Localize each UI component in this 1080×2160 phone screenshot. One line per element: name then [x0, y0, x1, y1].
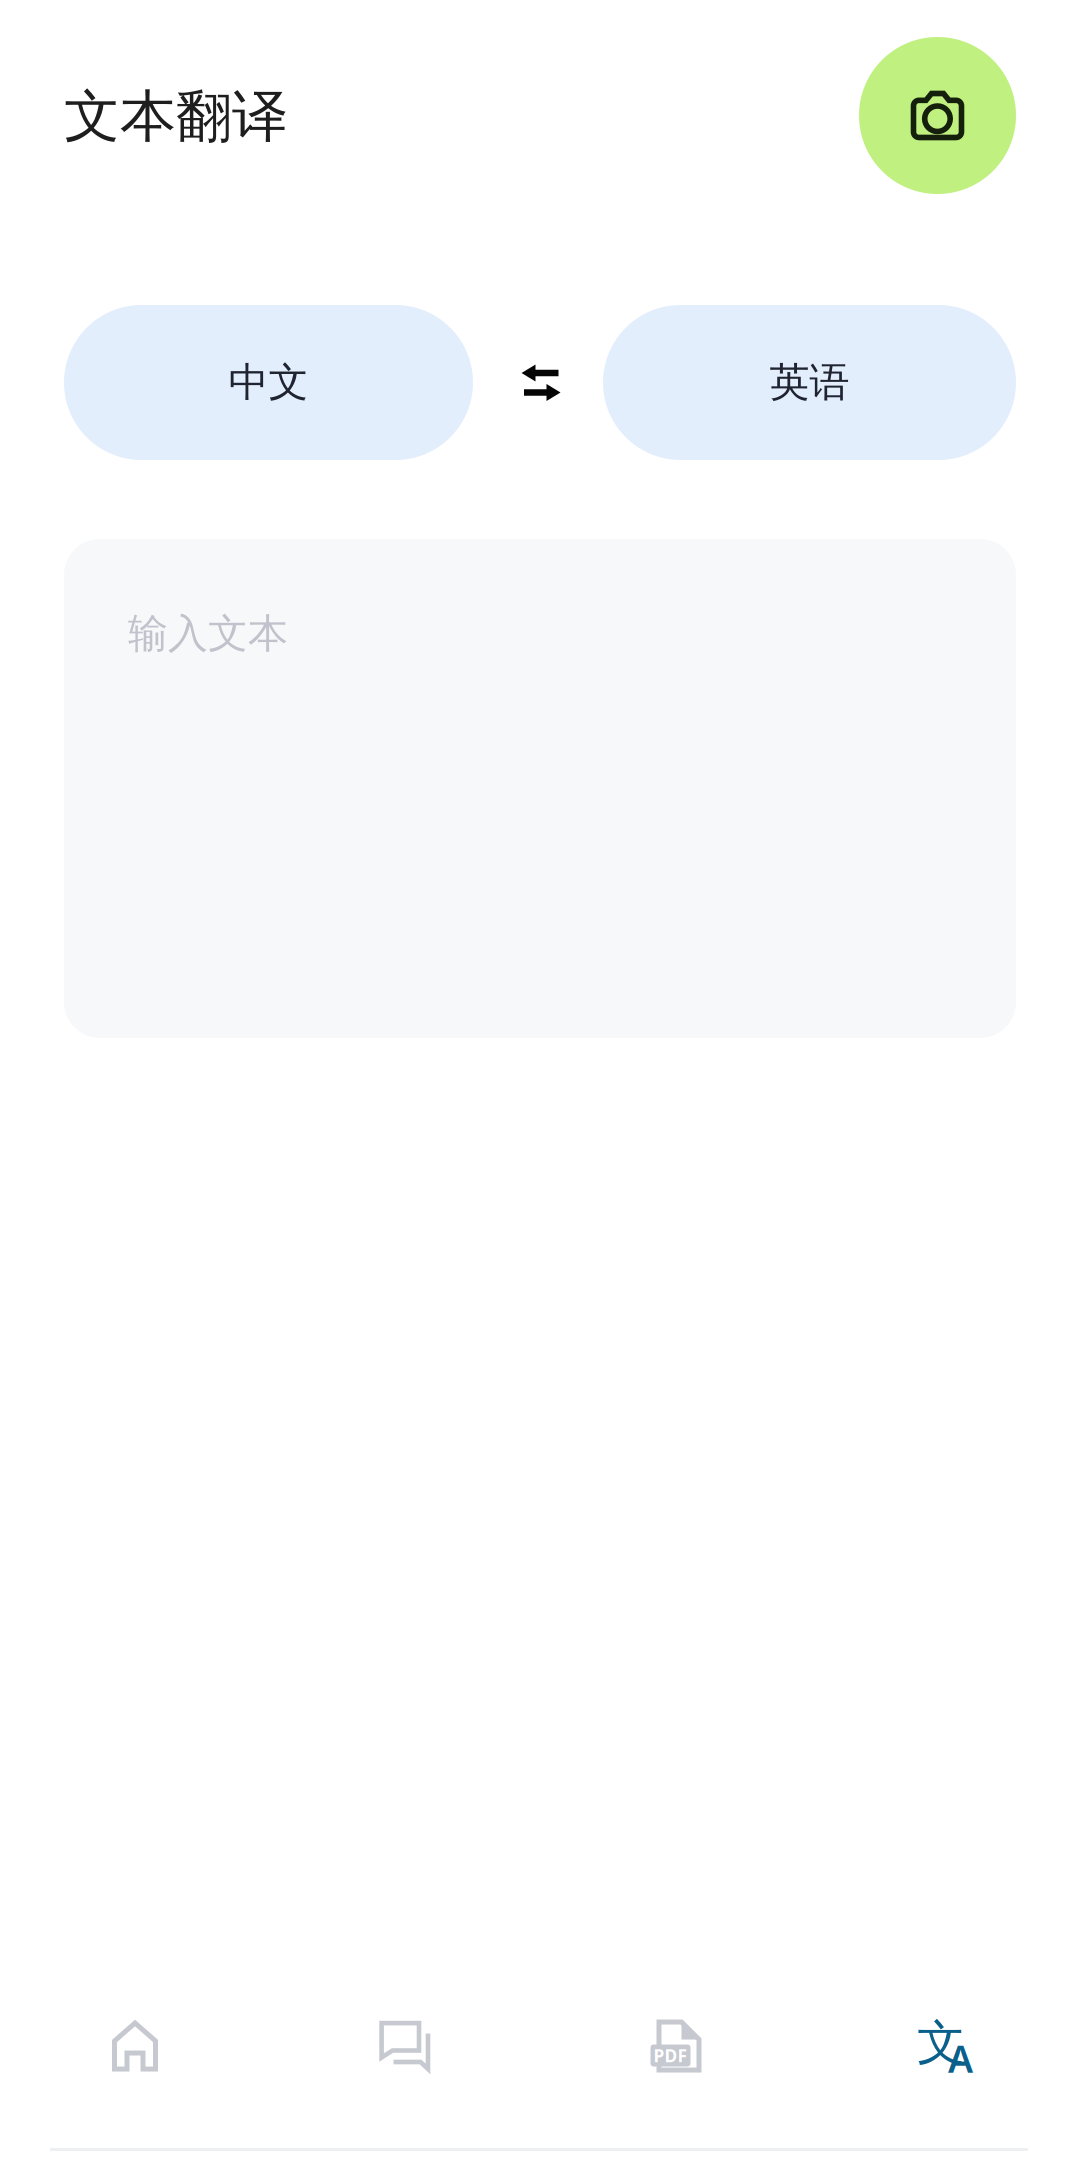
staticText: 文本翻译: [64, 82, 288, 151]
button[interactable]: Translate: [810, 1990, 1080, 2102]
staticText: 输入文本: [128, 609, 288, 658]
staticText: PDF: [653, 2044, 687, 2067]
staticText: 中文: [228, 358, 308, 407]
staticText: 英语: [769, 358, 849, 407]
staticText: 文: [917, 2013, 965, 2072]
button[interactable]: Swap languages: [518, 363, 558, 401]
button[interactable]: Chat: [270, 1990, 540, 2102]
button[interactable]: Home: [0, 1990, 270, 2102]
button[interactable]: PDF documents: [540, 1990, 810, 2102]
button[interactable]: Camera: [859, 37, 1016, 194]
button[interactable]: 中文: [64, 305, 473, 460]
staticText: A: [948, 2033, 973, 2083]
button[interactable]: 英语: [603, 305, 1016, 460]
